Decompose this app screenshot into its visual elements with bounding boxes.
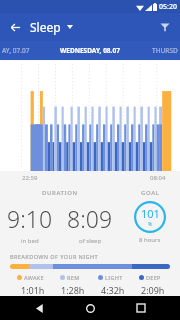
staticText: 101 bbox=[141, 206, 160, 221]
button[interactable]: WEDNESDAY, 08.07 bbox=[60, 46, 120, 55]
staticText: 8:09 bbox=[67, 203, 113, 234]
staticText: REM bbox=[67, 274, 80, 281]
staticText: 22:59 bbox=[22, 174, 38, 182]
button[interactable]: AWAKE bbox=[10, 274, 50, 296]
staticText: 1:28h bbox=[61, 284, 85, 296]
button[interactable]: REM bbox=[50, 274, 90, 296]
staticText: 8 hours bbox=[139, 236, 161, 244]
staticText: 4:32h bbox=[101, 284, 125, 296]
button[interactable]: GOAL bbox=[120, 185, 180, 244]
button[interactable]: AY, 07.07 bbox=[2, 46, 30, 55]
staticText: Sleep bbox=[30, 19, 61, 35]
staticText: AWAKE bbox=[24, 274, 44, 281]
staticText: of sleep bbox=[79, 237, 102, 245]
staticText: 9:10 bbox=[7, 203, 53, 234]
staticText: 1:01h bbox=[21, 284, 45, 296]
staticText: in bed bbox=[21, 237, 39, 245]
staticText: BREAKDOWN OF YOUR NIGHT bbox=[10, 253, 99, 260]
staticText: GOAL bbox=[141, 189, 160, 197]
staticText: DURATION bbox=[42, 189, 78, 197]
button[interactable]: Back bbox=[29, 297, 51, 319]
button[interactable]: LIGHT bbox=[90, 274, 130, 296]
staticText: % bbox=[148, 221, 153, 228]
staticText: LIGHT bbox=[105, 274, 123, 281]
button[interactable]: THURSD bbox=[152, 46, 178, 55]
staticText: DEEP bbox=[146, 274, 161, 281]
button[interactable]: Home bbox=[79, 297, 101, 319]
button[interactable]: Filter bbox=[156, 18, 174, 36]
button[interactable]: DEEP bbox=[130, 274, 170, 296]
button[interactable]: Recent apps bbox=[130, 297, 152, 319]
button[interactable]: Sleep bbox=[30, 19, 73, 35]
button[interactable] bbox=[0, 60, 180, 171]
staticText: 2:09h bbox=[141, 284, 165, 296]
button[interactable]: Back bbox=[6, 18, 24, 36]
staticText: 08:04 bbox=[150, 174, 166, 182]
staticText: 05:20 bbox=[159, 2, 177, 12]
